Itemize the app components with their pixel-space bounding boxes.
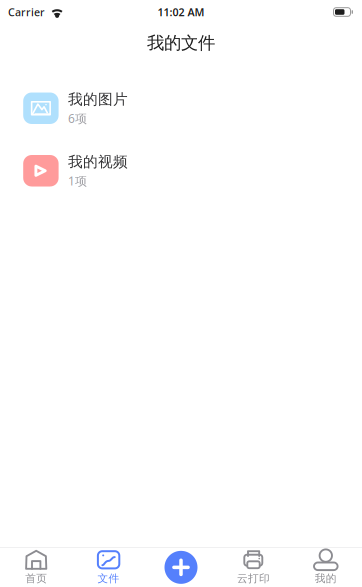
staticText: 我的图片 [68,90,128,108]
staticText: 1项 [68,173,87,189]
button[interactable]: 文件 [72,547,145,587]
button[interactable]: 我的 [290,547,362,587]
staticText: 我的文件 [147,32,215,54]
staticText: 6项 [68,110,87,126]
button[interactable]: 云打印 [217,547,290,587]
staticText: 我的 [315,572,337,585]
staticText: 文件 [98,572,120,585]
staticText: 我的视频 [68,153,128,171]
button[interactable]: 我的图片 [0,77,362,139]
button[interactable]: 首页 [0,547,72,587]
staticText: 云打印 [237,572,270,585]
staticText: 11:02 AM [157,5,204,19]
staticText: 首页 [25,572,47,585]
button[interactable]: 我的视频 [0,139,362,202]
button[interactable]: 新建 [145,547,217,587]
staticText: Carrier [8,5,45,19]
